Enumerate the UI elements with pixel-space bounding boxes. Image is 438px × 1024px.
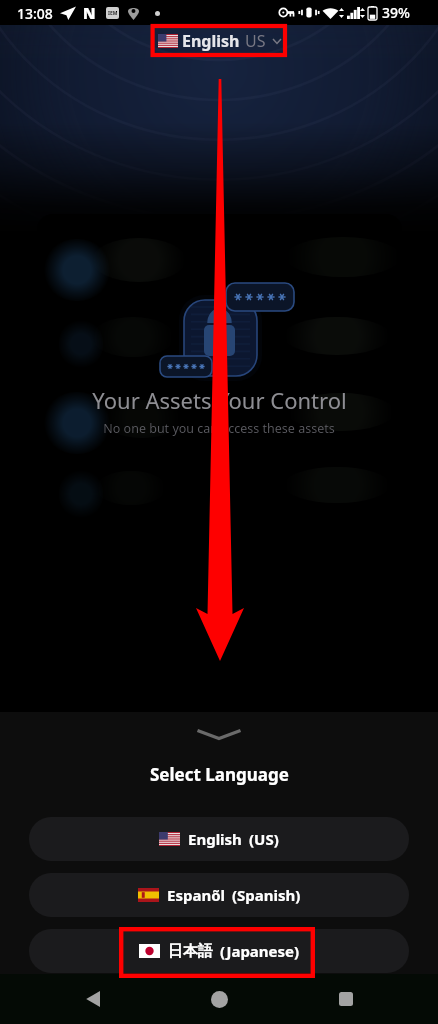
staticText: Espanõl [167, 885, 225, 905]
staticText: (Spanish) [232, 885, 301, 905]
staticText: 13:08 [17, 4, 53, 23]
staticText: Select Language [150, 763, 289, 786]
staticText: N [83, 3, 96, 23]
staticText: 日本語 [168, 942, 213, 961]
staticText: (Japanese) [220, 941, 300, 961]
staticText: English [188, 829, 242, 849]
button[interactable]: Home [199, 979, 239, 1019]
staticText: (US) [249, 829, 279, 849]
staticText: English [182, 30, 240, 52]
button[interactable]: Back [72, 979, 112, 1019]
staticText: IEM [108, 10, 118, 17]
button[interactable]: English [152, 27, 287, 55]
staticText: 39% [382, 3, 410, 22]
button[interactable]: 日本語 [29, 929, 409, 973]
button[interactable]: Espanõl [29, 873, 409, 917]
button[interactable]: English [29, 817, 409, 861]
staticText: No one but you can access these assets [103, 420, 335, 437]
button[interactable]: Recent apps [326, 979, 366, 1019]
staticText: Your Assets Your Control [92, 385, 347, 415]
staticText: US [245, 30, 266, 52]
